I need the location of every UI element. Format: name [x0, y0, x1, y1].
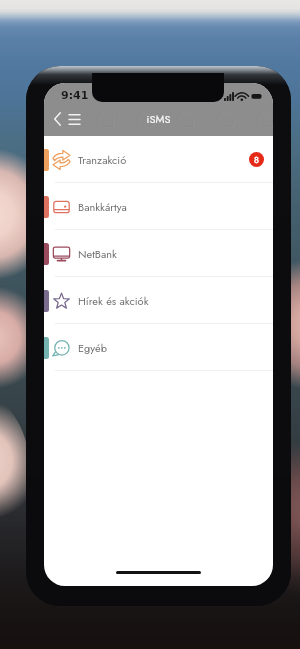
staticText: Egyéb [78, 340, 107, 356]
button[interactable]: Menu [64, 107, 84, 131]
button[interactable]: Hírek és akciók [44, 277, 273, 324]
staticText: Tranzakció [78, 152, 127, 168]
staticText: Hírek és akciók [78, 293, 149, 309]
staticText: 8 [254, 153, 259, 166]
staticText: NetBank [78, 246, 117, 262]
button[interactable]: NetBank [44, 230, 273, 277]
staticText: iSMS [44, 111, 273, 127]
button[interactable]: Back [48, 107, 66, 131]
staticText: 9:41 [61, 89, 89, 102]
button[interactable]: Tranzakció [44, 136, 273, 183]
button[interactable]: Bankkártya [44, 183, 273, 230]
staticText: Bankkártya [78, 199, 127, 215]
button[interactable]: Egyéb [44, 324, 273, 371]
